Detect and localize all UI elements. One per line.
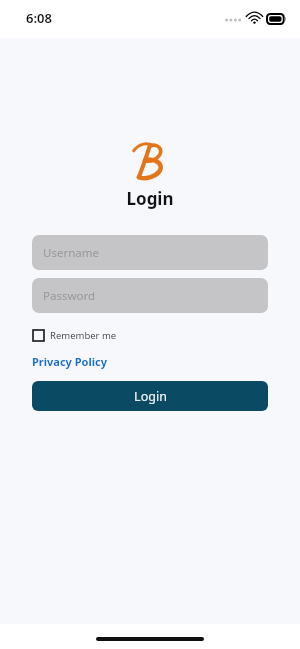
staticText: Login bbox=[126, 187, 174, 210]
staticText: Privacy Policy bbox=[32, 354, 107, 369]
button[interactable]: Login bbox=[32, 381, 268, 411]
staticText: Password bbox=[43, 288, 96, 304]
staticText: 6:08 bbox=[26, 9, 52, 27]
staticText: Remember me bbox=[50, 329, 117, 342]
button[interactable]: Username bbox=[32, 235, 268, 270]
staticText: Username bbox=[43, 245, 99, 261]
button[interactable]: Privacy Policy bbox=[32, 353, 107, 370]
button[interactable]: Password bbox=[32, 278, 268, 313]
staticText: Login bbox=[134, 388, 167, 405]
button[interactable]: Remember me bbox=[32, 327, 118, 344]
